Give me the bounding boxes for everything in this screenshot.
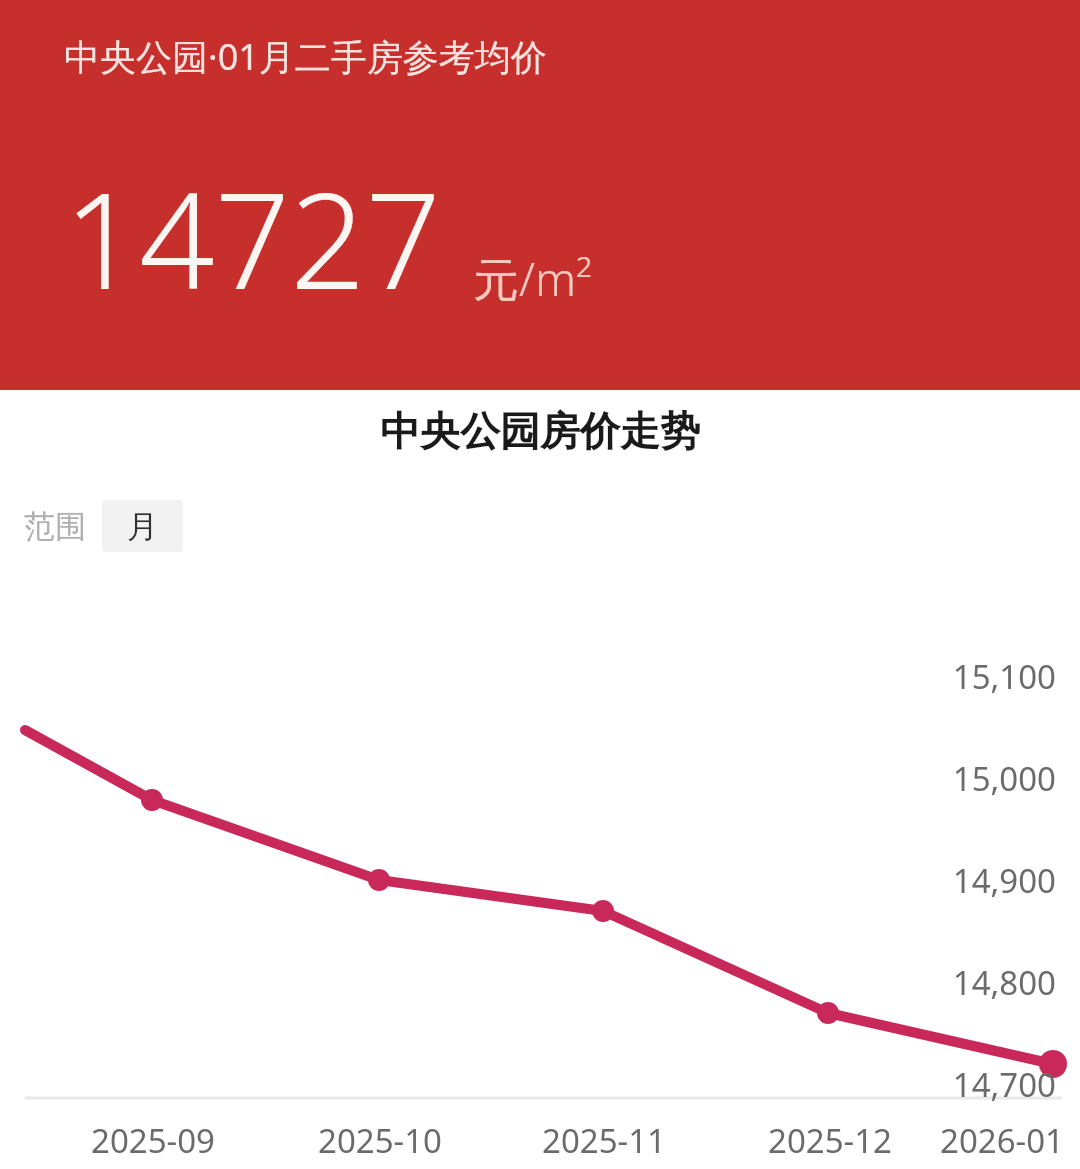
staticText: 2026-01	[940, 1118, 1064, 1163]
staticText: 2025-09	[91, 1118, 215, 1163]
staticText: 14,900	[952, 858, 1056, 903]
staticText: 元/m²	[473, 247, 592, 310]
staticText: 15,100	[952, 654, 1056, 699]
staticText: 2025-12	[768, 1118, 892, 1163]
staticText: 2025-10	[318, 1118, 442, 1163]
staticText: 中央公园房价走势	[380, 406, 700, 456]
staticText: 14,700	[952, 1062, 1056, 1107]
staticText: 14727	[64, 148, 441, 328]
staticText: 月	[127, 507, 158, 546]
staticText: 2025-11	[542, 1118, 666, 1163]
staticText: 14,800	[952, 960, 1056, 1005]
staticText: 中央公园·01月二手房参考均价	[64, 32, 547, 81]
staticText: 范围	[24, 507, 86, 546]
staticText: 15,000	[952, 756, 1056, 801]
button[interactable]: 月	[102, 500, 183, 552]
